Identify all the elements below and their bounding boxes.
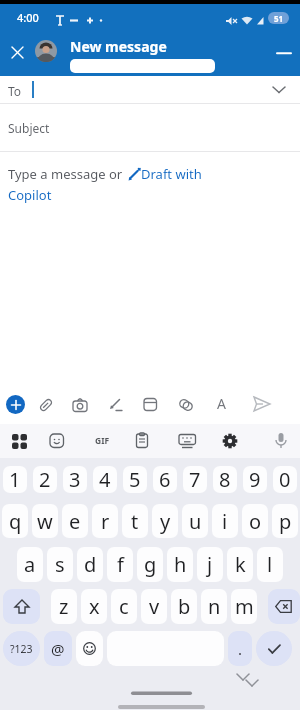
button[interactable] [252, 395, 272, 415]
button[interactable] [72, 397, 89, 414]
button[interactable]: ?123 [3, 631, 40, 666]
staticText: z [59, 593, 69, 620]
button[interactable]: 2 [33, 466, 57, 493]
staticText: n [208, 593, 221, 620]
button[interactable]: r [92, 504, 118, 538]
button[interactable]: z [51, 589, 77, 624]
button[interactable] [11, 433, 28, 450]
button[interactable]: @ [44, 631, 72, 666]
button[interactable]: Type a message or [0, 152, 300, 388]
staticText: 9 [249, 466, 261, 493]
button[interactable]: e [62, 504, 88, 538]
button[interactable]: 0 [273, 466, 297, 493]
staticText: e [69, 508, 81, 535]
button[interactable]: 5 [123, 466, 147, 493]
button[interactable]: 8 [213, 466, 237, 493]
button[interactable]: A [213, 393, 229, 413]
staticText: v [149, 593, 160, 620]
button[interactable] [135, 432, 150, 450]
button[interactable]: 9 [243, 466, 267, 493]
button[interactable] [8, 43, 26, 61]
staticText: p [279, 508, 292, 535]
staticText: g [144, 551, 157, 578]
button[interactable]: m [231, 589, 257, 624]
button[interactable] [38, 397, 54, 413]
button[interactable]: b [171, 589, 197, 624]
staticText: s [55, 551, 65, 578]
button[interactable]: h [167, 547, 193, 582]
staticText: r [101, 508, 110, 535]
button[interactable] [6, 395, 25, 414]
button[interactable]: k [227, 547, 253, 582]
staticText: Subject [8, 120, 50, 136]
staticText: GIF [95, 435, 110, 447]
staticText: x [89, 593, 100, 620]
staticText: t [131, 508, 139, 535]
button[interactable]: o [242, 504, 268, 538]
staticText: To [8, 83, 22, 99]
button[interactable] [76, 631, 103, 666]
staticText: f [117, 551, 124, 578]
staticText: a [24, 551, 36, 578]
button[interactable]: s [47, 547, 73, 582]
staticText: 1 [9, 466, 21, 493]
button[interactable]: 7 [183, 466, 207, 493]
button[interactable]: y [152, 504, 178, 538]
button[interactable] [3, 589, 40, 624]
button[interactable]: q [2, 504, 28, 538]
staticText: Type a message or [8, 165, 126, 183]
button[interactable]: 3 [63, 466, 87, 493]
button[interactable] [221, 432, 239, 450]
button[interactable] [178, 397, 194, 413]
button[interactable]: . [228, 631, 252, 666]
button[interactable] [268, 589, 300, 624]
button[interactable] [143, 397, 158, 412]
staticText: j [207, 551, 213, 578]
button[interactable]: Subject [0, 104, 300, 151]
button[interactable]: w [32, 504, 58, 538]
button[interactable]: 6 [153, 466, 177, 493]
button[interactable]: j [197, 547, 223, 582]
button[interactable] [49, 433, 65, 449]
button[interactable] [274, 432, 288, 450]
button[interactable]: c [111, 589, 137, 624]
staticText: k [235, 551, 246, 578]
button[interactable]: To [0, 76, 300, 103]
staticText: d [84, 551, 97, 578]
staticText: 8 [219, 466, 231, 493]
button[interactable] [35, 40, 57, 62]
button[interactable]: GIF [90, 432, 114, 450]
button[interactable] [272, 41, 296, 65]
button[interactable]: t [122, 504, 148, 538]
button[interactable]: Copilot [8, 186, 52, 204]
button[interactable] [256, 631, 292, 666]
staticText: ?123 [10, 642, 33, 656]
button[interactable]: v [141, 589, 167, 624]
staticText: l [267, 551, 273, 578]
button[interactable]: l [257, 547, 283, 582]
staticText: c [119, 593, 129, 620]
staticText: A [217, 394, 226, 413]
button[interactable]: n [201, 589, 227, 624]
button[interactable]: a [17, 547, 43, 582]
button[interactable]: Draft with [141, 165, 202, 183]
staticText: . [238, 639, 243, 659]
button[interactable]: 1 [3, 466, 27, 493]
staticText: i [222, 508, 228, 535]
button[interactable]: f [107, 547, 133, 582]
button[interactable] [178, 433, 197, 449]
staticText: y [160, 508, 171, 535]
staticText: 0 [279, 466, 291, 493]
button[interactable]: i [212, 504, 238, 538]
button[interactable]: x [81, 589, 107, 624]
button[interactable]: u [182, 504, 208, 538]
button[interactable]: g [137, 547, 163, 582]
button[interactable]: 4 [93, 466, 117, 493]
staticText: m [235, 593, 254, 620]
staticText: o [249, 508, 262, 535]
staticText: 5 [129, 466, 141, 493]
button[interactable]: d [77, 547, 103, 582]
button[interactable] [108, 397, 124, 413]
button[interactable]: p [272, 504, 298, 538]
